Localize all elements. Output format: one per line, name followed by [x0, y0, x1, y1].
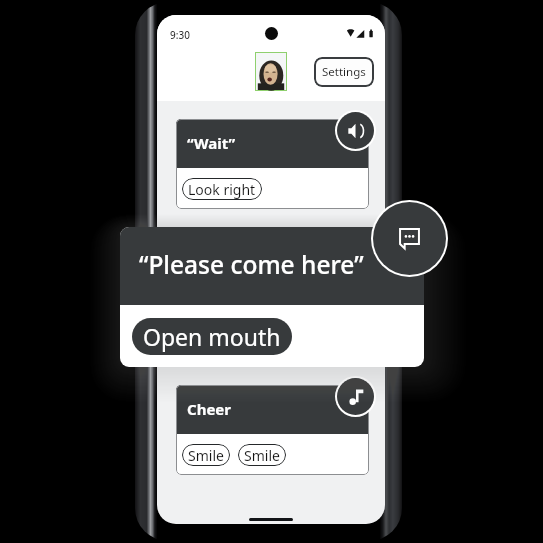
button[interactable]: Messages — [373, 202, 446, 275]
button[interactable]: Settings — [314, 57, 374, 87]
staticText: Settings — [322, 64, 366, 80]
button[interactable]: Look right — [188, 178, 256, 200]
staticText: “Wait” — [187, 133, 236, 153]
button[interactable]: Play sound — [337, 112, 374, 149]
staticText: Smile — [244, 446, 280, 465]
staticText: 9:30 — [170, 28, 190, 42]
button[interactable]: Smile — [244, 444, 280, 466]
staticText: Look right — [188, 180, 256, 199]
button[interactable]: Play music — [337, 378, 374, 415]
staticText: Smile — [188, 446, 224, 465]
button[interactable]: “Please come here” — [120, 227, 424, 367]
button[interactable]: Cheer — [176, 385, 369, 475]
staticText: Open mouth — [143, 321, 281, 352]
button[interactable]: “Wait” — [176, 119, 369, 209]
staticText: “Please come here” — [139, 248, 364, 281]
staticText: Cheer — [187, 399, 231, 419]
button[interactable]: Open mouth — [143, 318, 281, 355]
button[interactable]: Smile — [188, 444, 224, 466]
